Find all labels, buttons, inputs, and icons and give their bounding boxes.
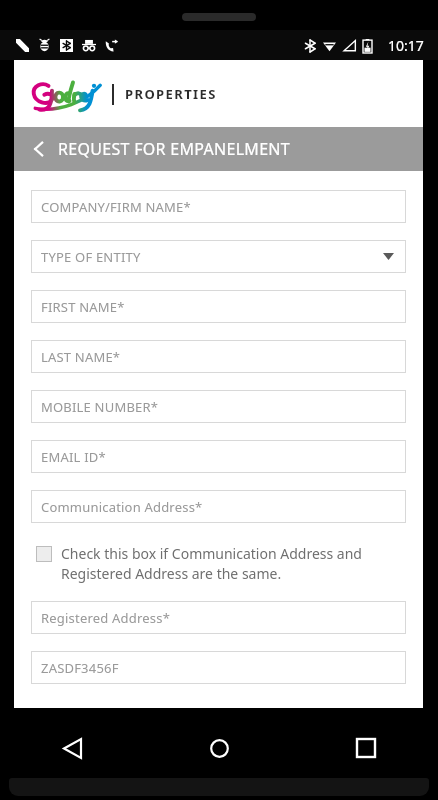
staticText: TYPE OF ENTITY [41,248,141,266]
button[interactable]: COMPANY/FIRM NAME* [31,190,406,223]
button[interactable]: Home [199,728,239,768]
button[interactable]: Back [14,127,423,171]
other: Back [26,136,52,162]
button[interactable]: Recent apps [346,728,386,768]
button[interactable]: Communication Address* [31,490,406,523]
staticText: LAST NAME* [41,348,121,366]
staticText: FIRST NAME* [41,298,125,316]
staticText: EMAIL ID* [41,448,106,466]
staticText: ZASDF3456F [41,659,119,677]
button[interactable]: Check this box if Communication Address … [31,544,406,584]
button[interactable]: EMAIL ID* [31,440,406,473]
staticText: PROPERTIES [125,85,217,103]
staticText: Check this box if Communication Address … [61,544,406,584]
staticText: Communication Address* [41,498,203,516]
staticText: 10:17 [388,36,424,55]
staticText: REQUEST FOR EMPANELMENT [58,138,291,160]
button[interactable]: FIRST NAME* [31,290,406,323]
staticText: MOBILE NUMBER* [41,398,159,416]
button[interactable]: Back [52,728,92,768]
button[interactable]: MOBILE NUMBER* [31,390,406,423]
staticText: Registered Address* [41,609,170,627]
button[interactable]: LAST NAME* [31,340,406,373]
button[interactable]: Registered Address* [31,601,406,634]
button[interactable]: ZASDF3456F [31,651,406,684]
button[interactable]: TYPE OF ENTITY [31,240,406,273]
staticText: COMPANY/FIRM NAME* [41,198,191,216]
